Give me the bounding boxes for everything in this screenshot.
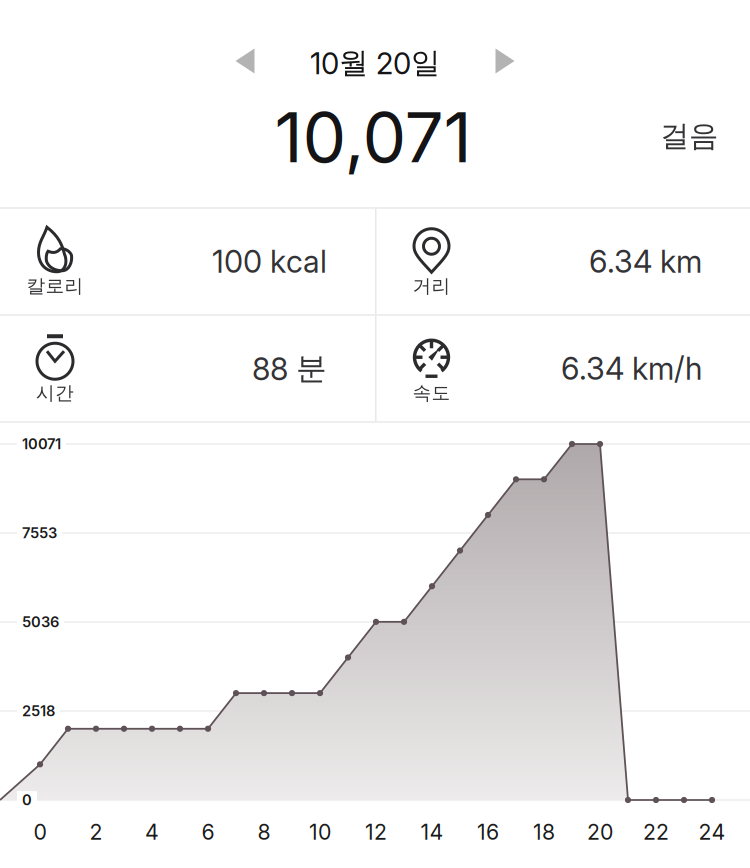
staticText: 100 kcal — [212, 243, 327, 280]
staticText: 10월 20일 — [310, 44, 440, 81]
staticText: 칼로리 — [26, 274, 83, 298]
staticText: 10 — [309, 819, 331, 845]
staticText: 5036 — [22, 613, 59, 631]
staticText: 0 — [22, 791, 32, 809]
staticText: 속도 — [412, 381, 450, 405]
button[interactable]: Next day — [477, 37, 533, 85]
staticText: 4 — [145, 819, 159, 845]
staticText: 걸음 — [660, 117, 718, 154]
staticText: 10071 — [22, 435, 61, 453]
button[interactable]: 속도 — [376, 316, 750, 421]
staticText: 거리 — [412, 274, 450, 298]
staticText: 18 — [533, 819, 555, 845]
staticText: 0 — [33, 819, 46, 845]
staticText: 6.34 km — [589, 243, 702, 280]
staticText: 12 — [365, 819, 387, 845]
staticText: 88 분 — [252, 349, 327, 388]
staticText: 6.34 km/h — [561, 350, 702, 387]
button[interactable]: 칼로리 — [0, 209, 375, 314]
staticText: 14 — [420, 819, 443, 845]
staticText: 시간 — [36, 381, 74, 405]
staticText: 20 — [587, 819, 613, 845]
button[interactable]: 거리 — [376, 209, 750, 314]
staticText: 8 — [257, 819, 270, 845]
staticText: 7553 — [22, 524, 57, 542]
button[interactable]: 시간 — [0, 316, 375, 421]
staticText: 22 — [643, 819, 669, 845]
staticText: 2518 — [22, 702, 55, 720]
staticText: 2 — [89, 819, 102, 845]
staticText: 10,071 — [274, 95, 471, 179]
staticText: 16 — [477, 819, 499, 845]
button[interactable]: Previous day — [217, 37, 273, 85]
staticText: 24 — [698, 819, 725, 845]
staticText: 6 — [201, 819, 214, 845]
